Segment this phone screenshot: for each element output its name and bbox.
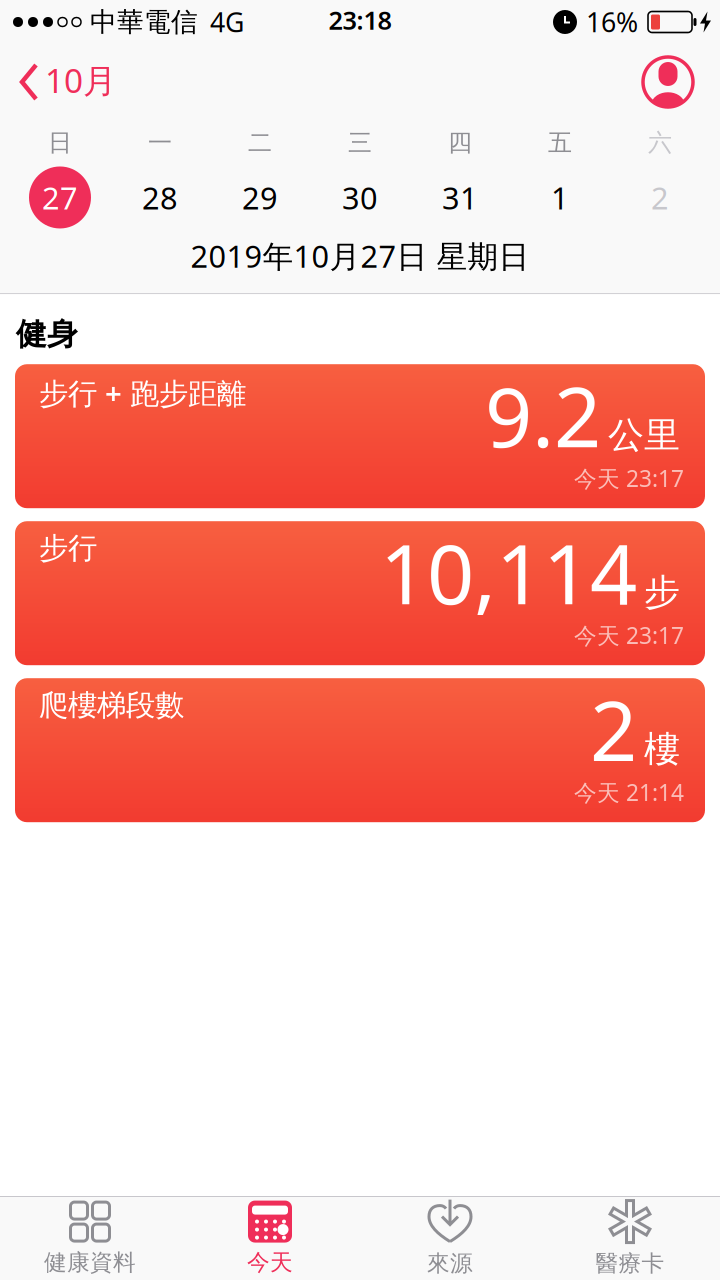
staticText: 今天 23:17 [574, 463, 684, 493]
staticText: 2019年10月27日 星期日 [190, 235, 529, 276]
staticText: 今天 23:17 [574, 620, 684, 650]
button[interactable]: 29 [210, 166, 310, 228]
staticText: 今天 21:14 [574, 777, 684, 807]
staticText: 醫療卡 [595, 1250, 664, 1277]
staticText: 29 [242, 177, 278, 218]
staticText: 2 [651, 177, 669, 218]
staticText: 健康資料 [44, 1249, 136, 1276]
staticText: 10,114 [380, 517, 637, 627]
staticText: 一 [148, 128, 172, 157]
button[interactable]: 28 [110, 166, 210, 228]
button[interactable]: 醫療卡 [540, 1197, 720, 1279]
button[interactable]: 1 [510, 166, 610, 228]
staticText: 16% [586, 4, 638, 40]
button[interactable]: 來源 [360, 1197, 540, 1279]
button[interactable]: 步行 + 跑步距離 [0, 364, 720, 508]
staticText: 27 [42, 177, 78, 218]
staticText: 今天 [247, 1249, 293, 1276]
staticText: 中華電信 [90, 6, 198, 38]
staticText: 四 [448, 128, 472, 157]
staticText: 來源 [427, 1250, 473, 1277]
staticText: 二 [248, 128, 272, 157]
staticText: 三 [348, 128, 372, 157]
button[interactable]: 2 [610, 166, 710, 228]
staticText: 31 [442, 177, 478, 218]
staticText: 4G [210, 4, 244, 40]
button[interactable]: 30 [310, 166, 410, 228]
staticText: 2 [590, 674, 637, 784]
staticText: 爬樓梯段數 [39, 687, 184, 723]
staticText: 步行 + 跑步距離 [39, 373, 246, 412]
staticText: 健身 [16, 315, 78, 353]
button[interactable]: 10月 [0, 60, 116, 104]
button[interactable]: 31 [410, 166, 510, 228]
staticText: 1 [551, 177, 569, 218]
staticText: 28 [142, 177, 178, 218]
staticText: 六 [648, 128, 672, 157]
staticText: 30 [342, 177, 378, 218]
staticText: 公里 [608, 413, 680, 457]
button[interactable]: 健康檔案 [643, 57, 720, 107]
staticText: 日 [48, 128, 72, 157]
button[interactable]: 2019年10月27日 星期日 [190, 228, 529, 293]
button[interactable]: 健康資料 [0, 1197, 180, 1279]
staticText: 步 [644, 570, 680, 614]
button[interactable]: 27 [10, 166, 110, 228]
button[interactable]: 步行 [0, 521, 720, 665]
staticText: 步行 [39, 530, 97, 566]
staticText: 10月 [45, 58, 116, 102]
staticText: 樓 [644, 727, 680, 771]
button[interactable]: 今天 [180, 1197, 360, 1279]
staticText: 9.2 [485, 360, 601, 470]
staticText: 23:18 [328, 3, 391, 37]
button[interactable]: 爬樓梯段數 [0, 678, 720, 822]
staticText: 五 [548, 128, 572, 157]
